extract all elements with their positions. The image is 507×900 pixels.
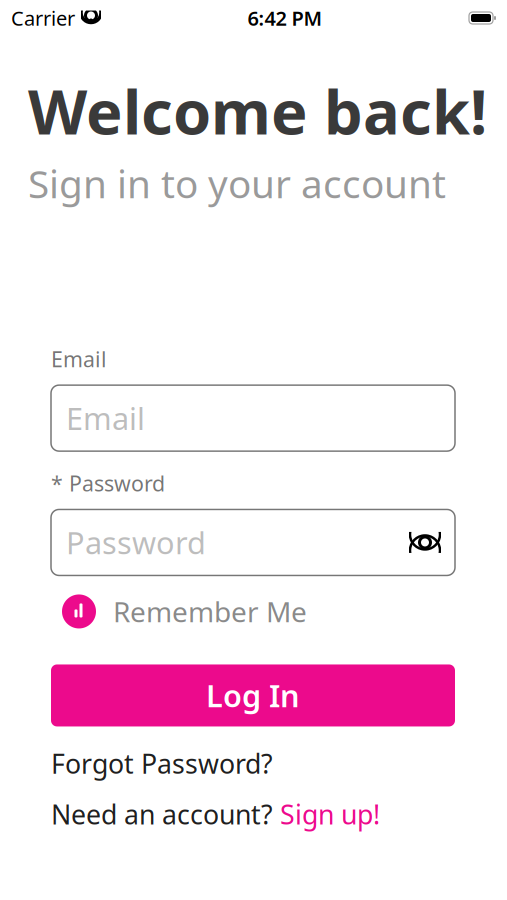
button[interactable]: Forgot Password? xyxy=(51,748,273,778)
staticText: 6:42 PM xyxy=(247,5,322,31)
staticText: Password xyxy=(66,522,206,563)
staticText: Remember Me xyxy=(113,593,307,630)
staticText: Email xyxy=(66,398,145,438)
staticText: Welcome back! xyxy=(28,70,487,151)
staticText: Carrier xyxy=(11,5,75,31)
staticText: Forgot Password? xyxy=(51,746,273,781)
staticText: Sign in to your account xyxy=(28,157,446,209)
button[interactable]: Show password xyxy=(403,520,447,564)
button[interactable]: Log In xyxy=(51,664,455,726)
staticText: * Password xyxy=(51,469,165,497)
staticText: Email xyxy=(51,345,107,373)
button[interactable]: Sign up! xyxy=(280,796,380,832)
button[interactable]: Remember Me xyxy=(62,589,466,633)
staticText: Sign up! xyxy=(280,796,380,832)
staticText: Log In xyxy=(206,675,300,716)
staticText: Need an account? xyxy=(51,796,280,832)
